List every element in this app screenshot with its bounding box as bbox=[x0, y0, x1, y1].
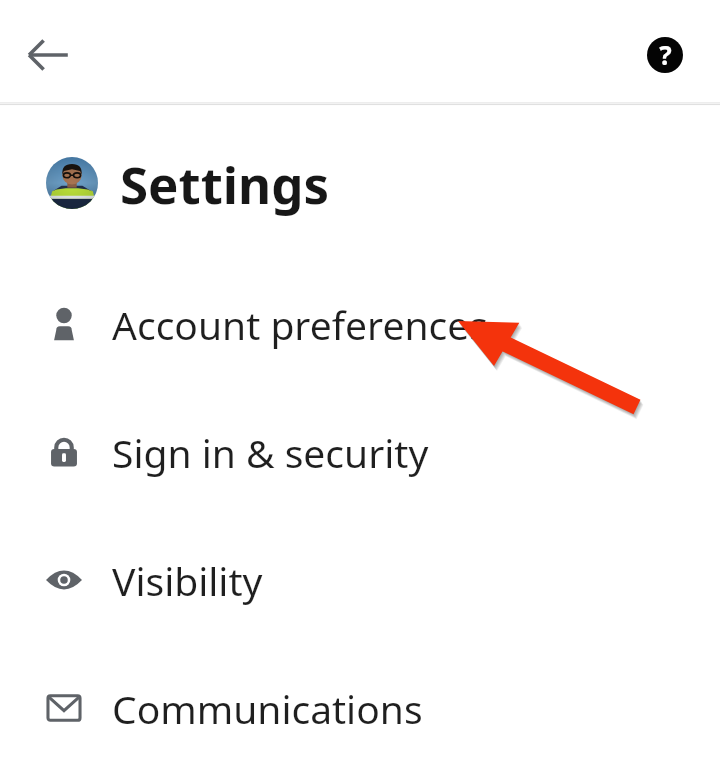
button[interactable]: Communications bbox=[0, 644, 720, 772]
staticText: Account preferences bbox=[112, 298, 488, 351]
staticText: ? bbox=[659, 37, 672, 72]
button[interactable]: Help bbox=[630, 20, 700, 90]
staticText: Visibility bbox=[112, 554, 263, 607]
staticText: Settings bbox=[120, 149, 330, 218]
staticText: Sign in & security bbox=[112, 426, 429, 479]
button[interactable]: Back bbox=[14, 21, 82, 89]
button[interactable]: Account profile photo bbox=[46, 157, 98, 209]
button[interactable]: Account preferences bbox=[0, 260, 720, 388]
button[interactable]: Sign in & security bbox=[0, 388, 720, 516]
staticText: Communications bbox=[112, 682, 423, 735]
button[interactable]: Visibility bbox=[0, 516, 720, 644]
